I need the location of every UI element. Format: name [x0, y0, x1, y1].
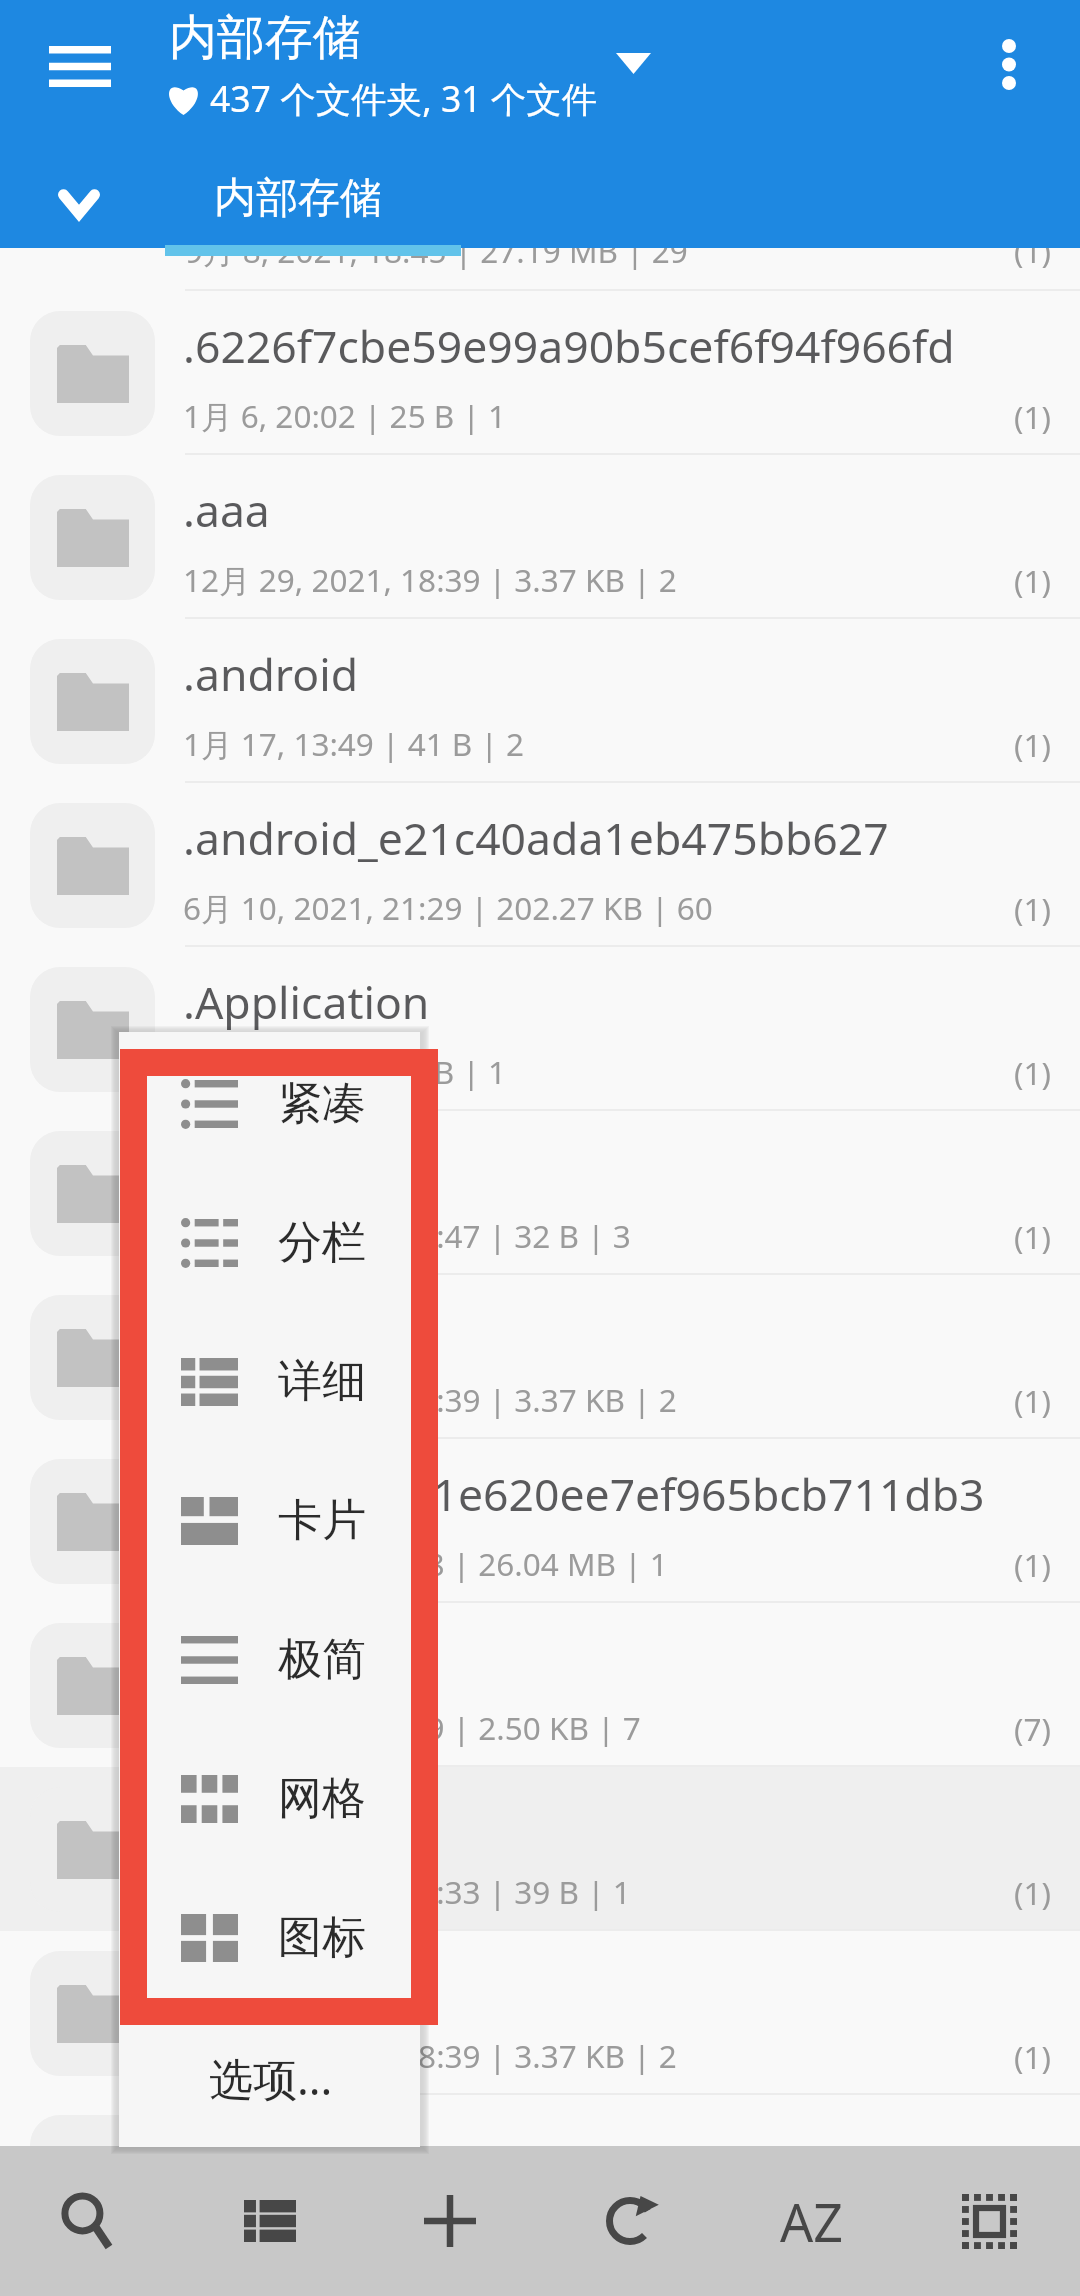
staticText: 9月 8, 2021, 18:45 | 27.19 MB | 29	[185, 229, 1014, 272]
button[interactable]: Navigation drawer	[20, 6, 140, 126]
staticText: (1)	[1014, 1871, 1051, 1914]
staticText: (1)	[1014, 559, 1051, 602]
button[interactable]: .android	[0, 619, 1080, 783]
staticText: 12月 29, 2021, 18:39 | 3.37 KB | 2	[183, 1378, 677, 1421]
staticText: .Application	[183, 971, 430, 1032]
staticText: 1月 17, 13:49 | 41 B | 2	[183, 722, 525, 765]
button[interactable]: .BDsafe	[0, 1111, 1080, 1275]
button[interactable]: Collapse path	[38, 163, 120, 245]
staticText: 选项...	[209, 2048, 333, 2108]
staticText: 图标	[278, 1910, 366, 1965]
staticText: .dfiles	[183, 1791, 307, 1852]
staticText: .6226f7cbe59e99a90b5cef6f94f966fd	[183, 315, 955, 376]
staticText: 6月 10, 2021, 21:29 | 202.27 KB | 60	[183, 886, 713, 929]
button[interactable]: 详细	[119, 1312, 420, 1451]
staticText: (1)	[1014, 887, 1051, 930]
button[interactable]: .android_e21c40ada1eb475bb627	[0, 783, 1080, 947]
button[interactable]: .a3f8b2c36c1e620ee7ef965bcb711db3	[0, 1439, 1080, 1603]
staticText: 详细	[278, 1354, 366, 1409]
button[interactable]: .bbb	[0, 1275, 1080, 1439]
button[interactable]: 卡片	[119, 1451, 420, 1590]
staticText: (1)	[1014, 723, 1051, 766]
staticText: 内部存储	[214, 172, 382, 225]
button[interactable]: Sort	[746, 2156, 876, 2286]
staticText: .a3f8b2c36c1e620ee7ef965bcb711db3	[183, 1463, 985, 1524]
button[interactable]: Refresh	[565, 2156, 695, 2286]
staticText: (1)	[1014, 2199, 1051, 2242]
button[interactable]: .eee	[0, 1931, 1080, 2095]
button[interactable]: 网格	[119, 1729, 420, 1868]
staticText: 1月 5, 2022, 18:58 | 26.04 MB | 1	[183, 1542, 668, 1585]
button[interactable]: .Application	[0, 947, 1080, 1111]
staticText: 437 个文件夹, 31 个文件	[210, 74, 598, 122]
button[interactable]: Select all	[924, 2156, 1054, 2286]
button[interactable]: More options	[959, 14, 1059, 114]
staticText: 网格	[278, 1771, 366, 1826]
button[interactable]: .aaa	[0, 455, 1080, 619]
staticText: .android_e21c40ada1eb475bb627	[183, 807, 889, 868]
staticText: 紧凑	[278, 1076, 366, 1131]
staticText: (1)	[1014, 1379, 1051, 1422]
button[interactable]: 紧凑	[119, 1034, 420, 1173]
button[interactable]: Expand	[596, 26, 671, 101]
staticText: 1月 6, 20:02 | 25 B | 1	[183, 394, 507, 437]
staticText: 分栏	[278, 1215, 366, 1270]
button[interactable]: .dfiles	[0, 1767, 1080, 1931]
staticText: (1)	[1014, 2035, 1051, 2078]
button[interactable]: List view	[205, 2156, 335, 2286]
staticText: .eee	[183, 1955, 271, 2016]
staticText: 1月 2, 2022, 16:49 | 2.50 KB | 7	[183, 1706, 641, 1749]
button[interactable]: 内部存储	[214, 172, 382, 225]
button[interactable]: 图标	[119, 1868, 420, 2007]
staticText: 极简	[278, 1632, 366, 1687]
staticText: 12月 29, 2021, 18:39 | 3.37 KB | 2	[183, 558, 677, 601]
staticText: (1)	[1014, 395, 1051, 438]
staticText: (1)	[1014, 1051, 1051, 1094]
staticText: 1月 3, 2022, 09:12 | 1.20 KB | 4	[183, 2198, 641, 2241]
staticText: (7)	[1014, 1707, 1051, 1750]
staticText: (1)	[1014, 1543, 1051, 1586]
button[interactable]: Search	[18, 2156, 148, 2286]
staticText: 卡片	[278, 1493, 366, 1548]
staticText: .fff_jjj	[183, 2119, 296, 2180]
staticText: (1)	[1014, 1215, 1051, 1258]
staticText: 12月 29, 2021, 18:39 | 3.37 KB | 2	[183, 2034, 677, 2077]
button[interactable]: .fff_jjj	[0, 2095, 1080, 2259]
staticText: 11月 21, 2021, 09:33 | 39 B | 1	[183, 1870, 631, 1913]
button[interactable]: 分栏	[119, 1173, 420, 1312]
button[interactable]: 极简	[119, 1590, 420, 1729]
staticText: .bbb	[183, 1299, 278, 1360]
staticText: .aaa	[183, 479, 270, 540]
staticText: (1)	[1014, 229, 1051, 272]
staticText: 1月 6, 20:02 | 25 B | 1	[183, 1050, 507, 1093]
staticText: .DataSt	[183, 1627, 334, 1688]
staticText: 内部存储	[169, 8, 361, 68]
button[interactable]: 选项...	[119, 2013, 420, 2143]
staticText: .android	[183, 643, 359, 704]
button[interactable]: .6226f7cbe59e99a90b5cef6f94f966fd	[0, 291, 1080, 455]
staticText: AZ	[780, 2186, 843, 2257]
button[interactable]: .DataSt	[0, 1603, 1080, 1767]
button[interactable]: Add	[385, 2156, 515, 2286]
staticText: 12月 28, 2021, 13:47 | 32 B | 3	[183, 1214, 631, 1257]
